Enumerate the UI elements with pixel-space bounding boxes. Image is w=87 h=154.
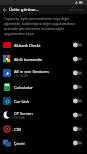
button[interactable]: Toggle overlay permission [71, 138, 84, 148]
staticText: Tuşlarınız, açılır pencerelerinin veya d… [4, 16, 83, 36]
staticText: Calculator [14, 85, 33, 90]
button[interactable]: Toggle overlay permission [71, 96, 84, 106]
button[interactable]: Toggle overlay permission [71, 110, 84, 120]
button[interactable]: Toggle overlay permission [71, 124, 84, 134]
staticText: 110.16 MB [14, 74, 28, 78]
button[interactable]: All in one Gestures [0, 66, 87, 80]
staticText: Akıllı kumanda [14, 57, 42, 62]
button[interactable]: Car Link [0, 94, 87, 108]
button[interactable]: Toggle overlay permission [71, 40, 84, 50]
button[interactable]: Toggle overlay permission [71, 68, 84, 78]
button[interactable]: Toggle overlay permission [71, 82, 84, 92]
button[interactable]: özel erişim [69, 8, 87, 12]
button[interactable]: Akıllı kumanda [0, 52, 87, 66]
button[interactable]: Toggle overlay permission [71, 54, 84, 64]
button[interactable]: Çeviri [0, 136, 87, 150]
button[interactable]: CP Screen [0, 108, 87, 122]
staticText: 6.80 MB [14, 116, 25, 120]
staticText: All in one Gestures [14, 69, 50, 74]
staticText: Çeviri [14, 141, 25, 146]
button[interactable]: Akbank Direkt [0, 38, 87, 52]
staticText: Akbank Direkt [14, 43, 41, 48]
button[interactable]: Calculator [0, 80, 87, 94]
staticText: CP Screen [14, 111, 33, 116]
staticText: Üstte görünebilen uygulamalar [9, 7, 39, 13]
staticText: CİN [14, 127, 21, 132]
button[interactable]: Back [0, 5, 9, 14]
staticText: Car Link [14, 99, 30, 104]
button[interactable]: CİN [0, 122, 87, 136]
